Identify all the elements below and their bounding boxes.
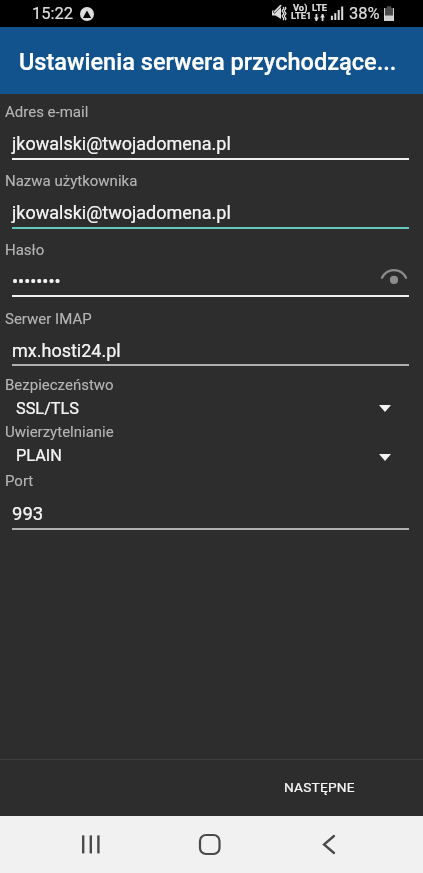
staticText: SSL/TLS [16,399,80,418]
staticText: LTE1 [291,10,312,21]
button[interactable]: Back [292,816,372,873]
button[interactable] [0,235,423,297]
staticText: Hasło [5,241,45,259]
staticText: Port [5,472,34,490]
button[interactable]: Recent apps [50,816,132,873]
button[interactable] [0,97,423,159]
button[interactable]: Bezpieczeństwo [0,372,423,417]
button[interactable] [0,304,423,366]
button[interactable]: Ustawienia serwera przychodzące... [0,27,423,94]
staticText: Nazwa użytkownika [5,172,138,190]
button[interactable]: Home [170,816,250,873]
button[interactable] [0,468,423,530]
staticText: 38% [349,4,380,23]
button[interactable]: NASTĘPNE [260,760,380,816]
staticText: Serwer IMAP [5,310,92,328]
staticText: Bezpieczeństwo [5,376,114,394]
staticText: LTE [312,2,328,13]
staticText: NASTĘPNE [284,779,355,795]
staticText: 993 [12,503,44,525]
staticText: Uwierzytelnianie [5,423,114,441]
staticText: Vo) [293,2,308,13]
staticText: mx.hosti24.pl [12,340,121,361]
staticText: 15:22 [32,4,74,23]
staticText: jkowalski@twojadomena.pl [12,202,231,223]
staticText: Ustawienia serwera przychodzące... [19,48,397,76]
staticText: PLAIN [16,446,62,465]
staticText: Adres e‑mail [5,103,89,121]
button[interactable]: Show password [376,263,412,295]
button[interactable]: Uwierzytelnianie [0,419,423,464]
staticText: •••••••• [12,271,61,292]
button[interactable] [0,166,423,228]
staticText: jkowalski@twojadomena.pl [12,133,231,154]
